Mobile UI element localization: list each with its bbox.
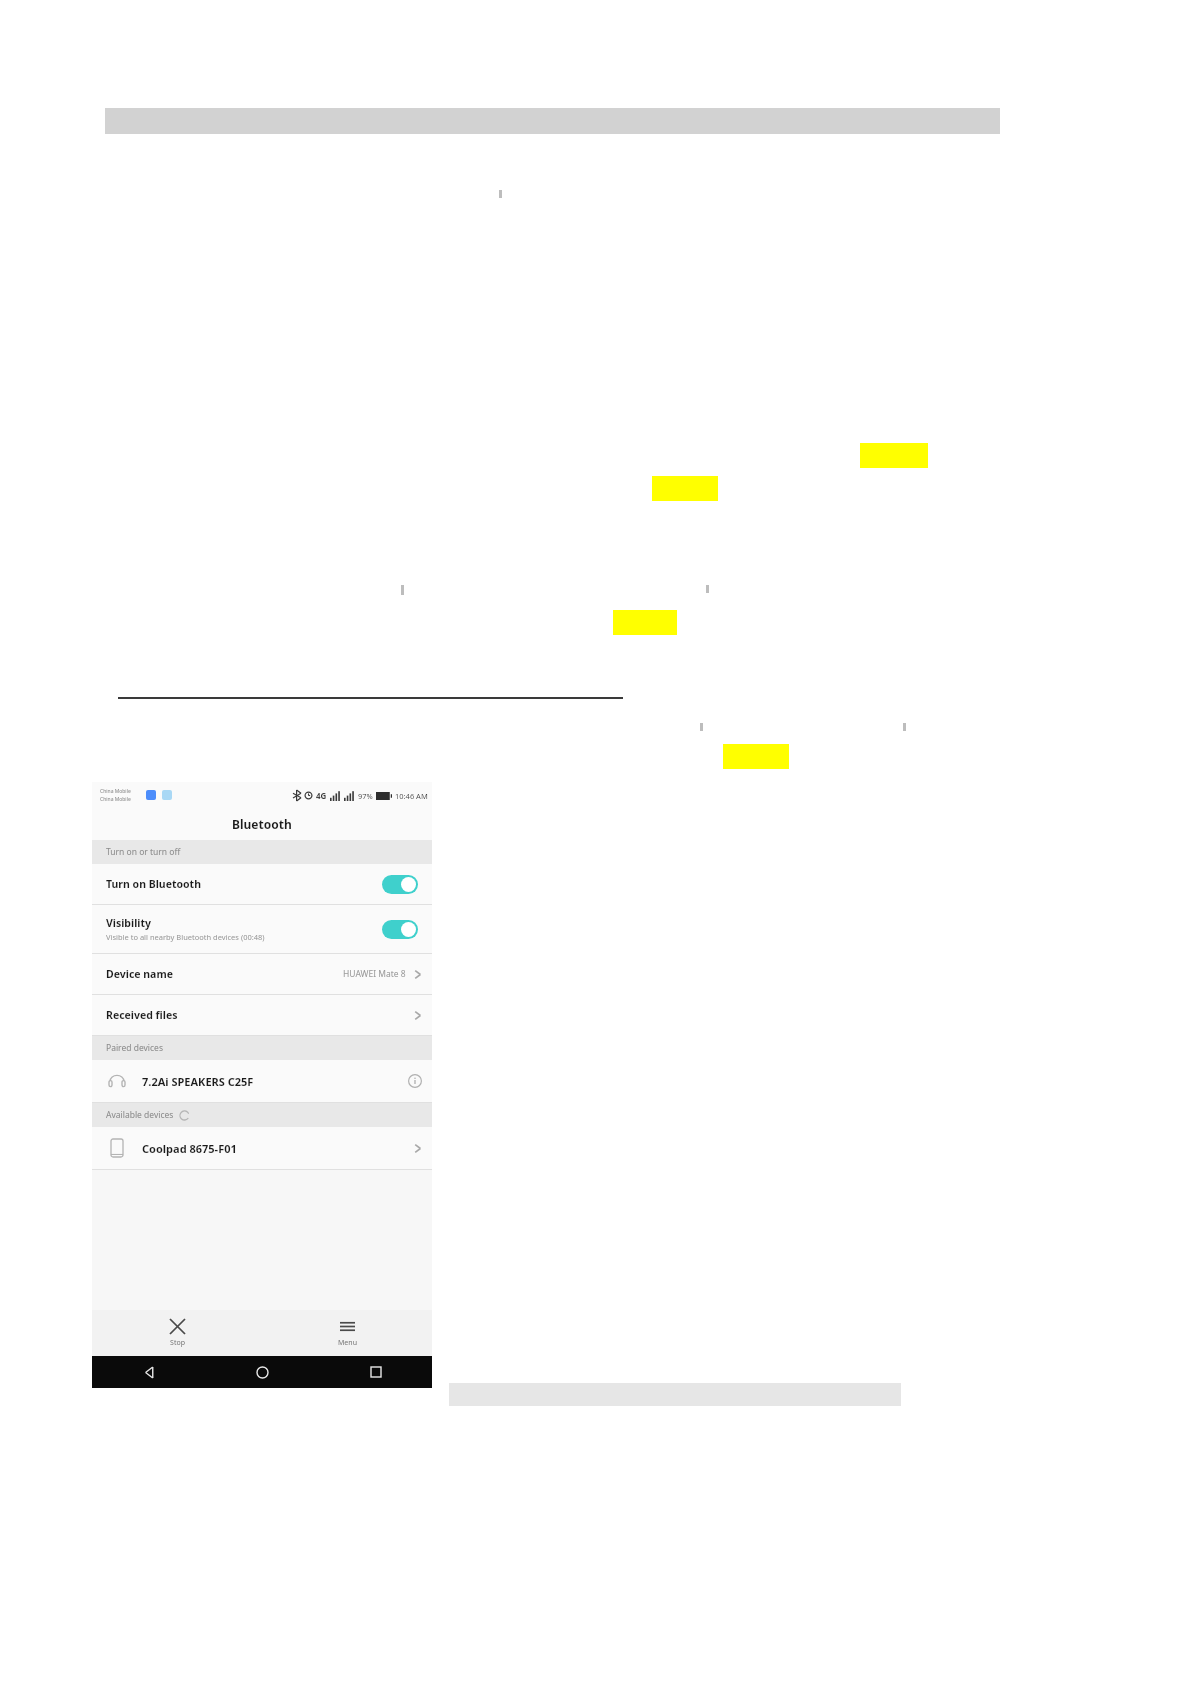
staticText: Menu [338, 1338, 357, 1348]
button[interactable]: Toggle [382, 920, 418, 939]
staticText: China Mobile [100, 788, 131, 795]
staticText: 10:46 AM [395, 791, 428, 801]
button[interactable]: 7.2Ai SPEAKERS C25F [92, 1060, 432, 1103]
staticText: China Mobile [100, 796, 131, 803]
button[interactable]: Received files [92, 995, 432, 1036]
staticText: Device name [106, 967, 343, 981]
button[interactable]: Back [92, 1356, 206, 1388]
staticText: Turn on or turn off [106, 846, 181, 858]
button[interactable]: Visibility [92, 905, 432, 954]
staticText: 97% [358, 791, 373, 801]
staticText: Turn on Bluetooth [106, 877, 201, 891]
staticText: Bluetooth [232, 816, 292, 832]
button[interactable]: Recents [319, 1356, 432, 1388]
staticText: Visibility [106, 916, 151, 930]
button[interactable]: Menu [262, 1310, 432, 1356]
staticText: 7.2Ai SPEAKERS C25F [142, 1074, 408, 1089]
staticText: Coolpad 8675-F01 [142, 1141, 414, 1156]
staticText: Received files [106, 1008, 414, 1022]
staticText: Available devices [106, 1109, 174, 1121]
staticText: Paired devices [106, 1042, 163, 1054]
button[interactable]: Stop [92, 1310, 262, 1356]
staticText: Visible to all nearby Bluetooth devices … [106, 932, 265, 942]
staticText: 4G [316, 790, 327, 801]
button[interactable]: Device info [408, 1074, 422, 1088]
button[interactable]: Turn on Bluetooth [92, 864, 432, 905]
button[interactable]: Device name [92, 954, 432, 995]
staticText: Stop [170, 1338, 185, 1348]
button[interactable]: Coolpad 8675-F01 [92, 1127, 432, 1170]
staticText: HUAWEI Mate 8 [343, 968, 406, 980]
button[interactable]: Toggle [382, 875, 418, 894]
button[interactable]: Home [206, 1356, 319, 1388]
